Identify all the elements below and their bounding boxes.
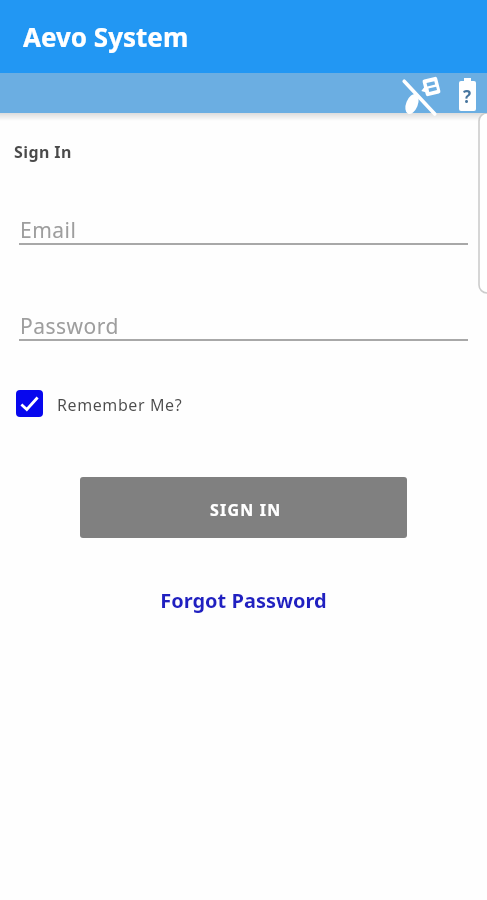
button[interactable] <box>19 205 468 245</box>
staticText: Password <box>20 312 119 341</box>
button[interactable] <box>16 390 43 417</box>
button[interactable] <box>19 301 468 341</box>
button[interactable]: SIGN IN <box>80 477 407 538</box>
staticText: SIGN IN <box>210 499 282 521</box>
staticText: Forgot Password <box>160 587 327 614</box>
staticText: Aevo System <box>23 19 189 54</box>
staticText: Email <box>20 216 77 245</box>
button[interactable]: ? <box>456 76 480 112</box>
staticText: Remember Me? <box>57 394 183 416</box>
staticText: ? <box>463 85 472 108</box>
button[interactable]: Forgot Password <box>160 587 327 614</box>
button[interactable] <box>398 74 442 114</box>
staticText: Sign In <box>14 141 72 163</box>
